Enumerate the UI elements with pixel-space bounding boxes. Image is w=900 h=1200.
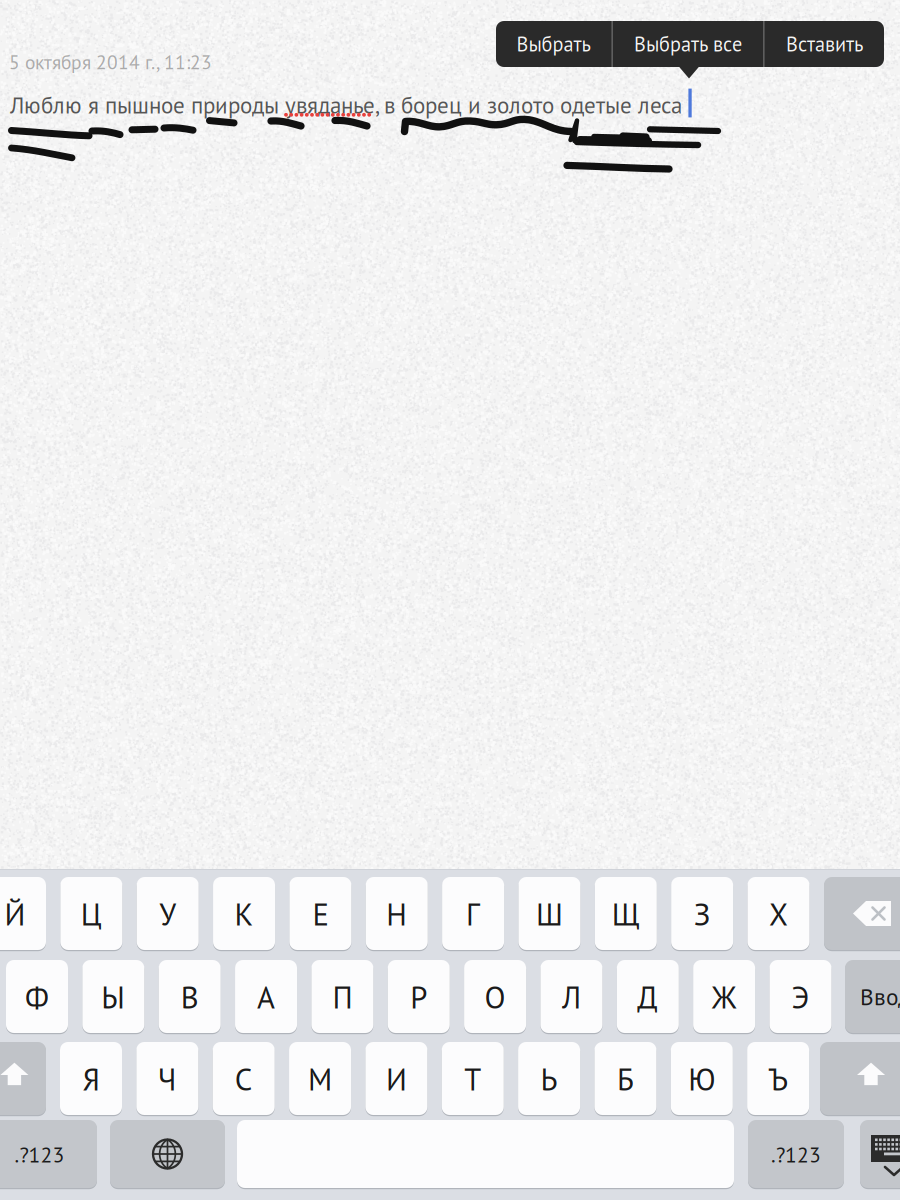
staticText: П — [332, 977, 352, 1017]
staticText: Э — [791, 977, 809, 1017]
button[interactable]: А — [235, 960, 297, 1035]
button[interactable]: С — [213, 1042, 275, 1117]
staticText: .?123 — [771, 1140, 821, 1168]
button[interactable] — [820, 1042, 900, 1117]
staticText: Ъ — [769, 1059, 788, 1099]
button[interactable]: Х — [747, 877, 809, 952]
button[interactable]: Н — [366, 877, 428, 952]
button[interactable]: Щ — [595, 877, 657, 952]
button[interactable]: Ю — [671, 1042, 733, 1117]
button[interactable]: Выбрать все — [613, 21, 763, 67]
button[interactable] — [110, 1120, 225, 1190]
staticText: Ы — [101, 977, 125, 1017]
button[interactable]: Д — [617, 960, 679, 1035]
button[interactable]: М — [289, 1042, 351, 1117]
button[interactable]: П — [311, 960, 373, 1035]
staticText: 5 октября 2014 г., 11:23 — [9, 49, 212, 75]
button[interactable]: Ъ — [747, 1042, 809, 1117]
staticText: Ж — [712, 977, 737, 1017]
button[interactable]: Ц — [60, 877, 122, 952]
staticText: Л — [562, 977, 581, 1017]
button[interactable]: Ш — [518, 877, 580, 952]
button[interactable]: Р — [388, 960, 450, 1035]
staticText: Й — [4, 894, 25, 934]
button[interactable]: Ж — [693, 960, 755, 1035]
staticText: М — [308, 1059, 332, 1099]
staticText: Г — [466, 894, 480, 934]
button[interactable]: В — [159, 960, 221, 1035]
button[interactable]: Й — [0, 877, 46, 952]
button[interactable]: Ы — [82, 960, 144, 1035]
staticText: Д — [637, 977, 658, 1017]
staticText: Т — [464, 1059, 481, 1099]
button[interactable]: Л — [540, 960, 602, 1035]
staticText: Ц — [81, 894, 102, 934]
staticText: Ч — [158, 1059, 177, 1099]
staticText: Вставить — [786, 31, 863, 57]
staticText: Н — [386, 894, 407, 934]
button[interactable]: З — [671, 877, 733, 952]
button[interactable] — [860, 1120, 900, 1190]
button[interactable]: .?123 — [748, 1120, 844, 1190]
staticText: К — [234, 894, 253, 934]
button[interactable]: Т — [442, 1042, 504, 1117]
button[interactable]: .?123 — [0, 1120, 97, 1190]
staticText: Х — [769, 894, 788, 934]
button[interactable]: Ь — [518, 1042, 580, 1117]
button[interactable]: Ч — [136, 1042, 198, 1117]
button[interactable]: Б — [594, 1042, 656, 1117]
staticText: Люблю я пышное природы увяданье, в борец… — [10, 90, 682, 120]
staticText: З — [694, 894, 711, 934]
staticText: Б — [617, 1059, 634, 1099]
button[interactable]: К — [213, 877, 275, 952]
staticText: Выбрать — [516, 31, 590, 57]
staticText: Ш — [536, 894, 563, 934]
button[interactable]: Ф — [6, 960, 68, 1035]
button[interactable] — [824, 877, 900, 952]
staticText: Р — [410, 977, 427, 1017]
button[interactable]: У — [137, 877, 199, 952]
staticText: Я — [82, 1059, 99, 1099]
staticText: О — [485, 977, 506, 1017]
staticText: Ю — [688, 1059, 715, 1099]
button[interactable]: Выбрать — [495, 21, 611, 67]
staticText: С — [235, 1059, 253, 1099]
staticText: Щ — [612, 894, 640, 934]
staticText: Ф — [25, 977, 49, 1017]
staticText: У — [159, 894, 176, 934]
button[interactable]: Вставить — [765, 21, 885, 67]
button[interactable]: О — [464, 960, 526, 1035]
staticText: Ь — [541, 1059, 558, 1099]
staticText: И — [386, 1059, 407, 1099]
button[interactable]: Г — [442, 877, 504, 952]
button[interactable] — [0, 1042, 46, 1117]
staticText: Е — [312, 894, 328, 934]
button[interactable]: Э — [769, 960, 831, 1035]
button[interactable] — [845, 960, 900, 1035]
button[interactable]: Е — [289, 877, 351, 952]
staticText: А — [257, 977, 275, 1017]
staticText: Выбрать все — [634, 31, 742, 57]
button[interactable]: Я — [60, 1042, 122, 1117]
button[interactable] — [237, 1120, 734, 1190]
staticText: В — [181, 977, 199, 1017]
staticText: .?123 — [14, 1140, 64, 1168]
button[interactable]: И — [365, 1042, 427, 1117]
staticText: Ввод — [860, 981, 900, 1012]
